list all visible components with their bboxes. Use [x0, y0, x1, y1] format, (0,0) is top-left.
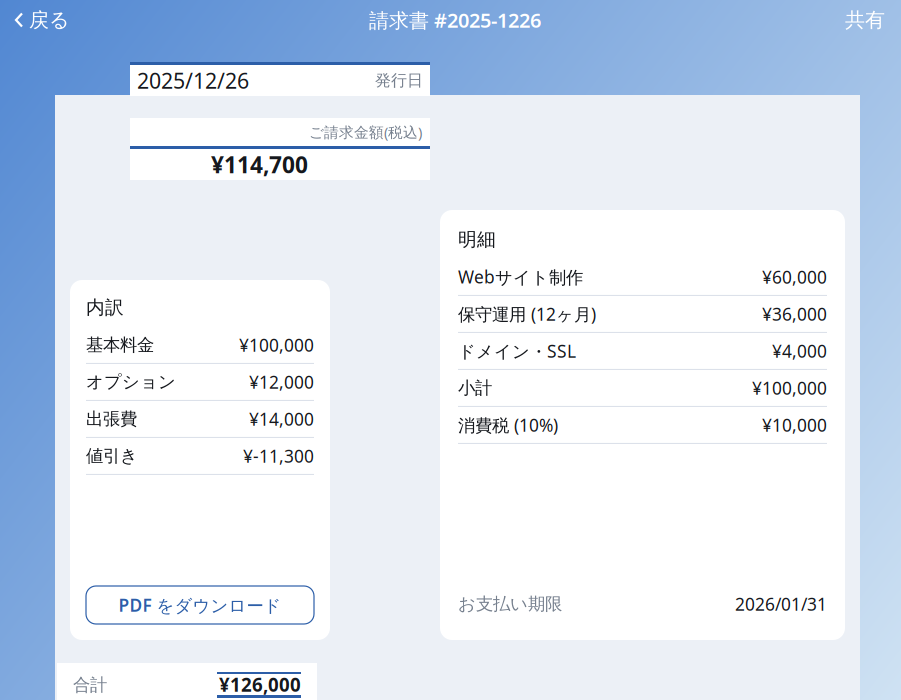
button[interactable]: 共有: [829, 0, 901, 40]
staticText: ¥100,000: [752, 376, 827, 399]
staticText: 値引き: [86, 445, 138, 467]
staticText: 共有: [845, 8, 885, 32]
staticText: ¥12,000: [249, 370, 314, 393]
staticText: ¥10,000: [762, 413, 827, 436]
staticText: オプション: [86, 371, 176, 393]
staticText: 戻る: [29, 8, 69, 32]
staticText: PDF をダウンロード: [118, 593, 281, 616]
staticText: お支払い期限: [458, 593, 562, 615]
staticText: ¥60,000: [762, 265, 827, 288]
staticText: 発行日: [375, 71, 423, 90]
staticText: 小計: [458, 377, 492, 399]
staticText: 合計: [73, 674, 107, 696]
staticText: 2026/01/31: [735, 592, 827, 615]
staticText: ¥-11,300: [243, 444, 314, 467]
button[interactable]: PDF をダウンロード: [86, 586, 314, 624]
staticText: 内訳: [86, 296, 124, 319]
staticText: ご請求金額(税込): [309, 122, 422, 142]
staticText: 保守運用 (12ヶ月): [458, 302, 596, 325]
staticText: 請求書 #2025-1226: [369, 7, 541, 33]
staticText: ドメイン・SSL: [458, 339, 576, 362]
staticText: 明細: [458, 228, 496, 251]
staticText: ¥114,700: [211, 149, 308, 179]
staticText: Webサイト制作: [458, 265, 583, 288]
staticText: ¥100,000: [239, 333, 314, 356]
staticText: 消費税 (10%): [458, 413, 558, 436]
staticText: ¥14,000: [249, 407, 314, 430]
staticText: ¥4,000: [772, 339, 827, 362]
staticText: ¥126,000: [219, 672, 301, 697]
staticText: 出張費: [86, 408, 137, 430]
staticText: ¥36,000: [762, 302, 827, 325]
button[interactable]: 戻る: [0, 0, 81, 40]
staticText: 2025/12/26: [137, 66, 249, 95]
staticText: 基本料金: [86, 334, 154, 356]
